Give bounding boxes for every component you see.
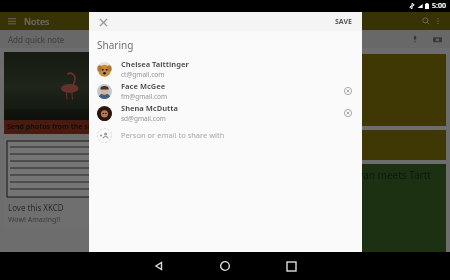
staticText: fm@gmail.com — [121, 92, 168, 101]
staticText: sd@gmail.com — [121, 114, 166, 123]
button[interactable]: Remove Shena McDutta — [342, 107, 354, 119]
button[interactable]: Close — [96, 15, 110, 29]
button[interactable]: More options — [432, 15, 444, 27]
staticText: Person or email to share with — [121, 130, 225, 140]
button[interactable]: Person or email to share with — [89, 124, 362, 146]
staticText: Send photos from the south — [7, 122, 105, 132]
staticText: Add quick note — [8, 34, 65, 45]
staticText: Wow! Amazing!! — [8, 215, 61, 225]
staticText: ct@gmail.com — [121, 70, 165, 79]
button[interactable]: Thanksgiving dinner RSVPs — [227, 54, 446, 126]
button[interactable]: Recents — [268, 252, 314, 280]
button[interactable]: Home — [202, 252, 248, 280]
button[interactable]: Love this XKCD — [4, 138, 223, 227]
button[interactable]: Send photos from the south — [4, 52, 223, 134]
button[interactable]: Search — [420, 15, 432, 27]
button[interactable]: Back — [136, 252, 182, 280]
staticText: Shena McDutta — [121, 103, 179, 113]
button[interactable]: Remove Face McGee — [342, 85, 354, 97]
staticText: Face McGee — [121, 81, 166, 91]
staticText: Notes — [24, 15, 50, 27]
staticText: SAVE — [335, 17, 352, 27]
button[interactable]: SAVE — [332, 15, 355, 29]
staticText: 5:00 — [432, 1, 446, 11]
button[interactable]: Shena McDutta — [89, 102, 362, 124]
button[interactable]: Face McGee — [89, 80, 362, 102]
staticText: Chelsea Taittinger — [121, 59, 189, 69]
staticText: When Jordan meets Sally Ewan meets Tartt — [231, 168, 431, 182]
button[interactable]: Chelsea Taittinger — [89, 58, 362, 80]
button[interactable]: Surprise party for Kristen — [227, 130, 446, 160]
button[interactable]: Menu — [6, 15, 18, 27]
staticText: Sharing — [97, 38, 134, 52]
button[interactable]: When Jordan meets Sally Ewan meets Tartt — [227, 164, 446, 280]
staticText: Love this XKCD — [8, 202, 64, 213]
